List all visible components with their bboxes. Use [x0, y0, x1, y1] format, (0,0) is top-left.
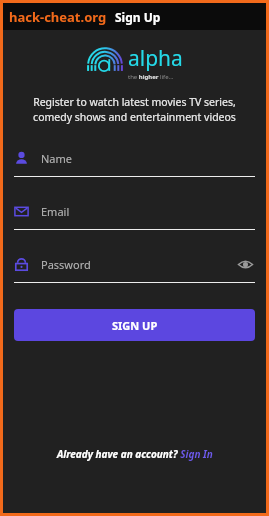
- staticText: Already have an account? Sign In: [57, 447, 213, 461]
- staticText: Register to watch latest movies TV serie…: [19, 95, 250, 124]
- button[interactable]: Show password: [235, 254, 255, 274]
- staticText: Email: [41, 204, 70, 219]
- staticText: Name: [41, 151, 73, 166]
- staticText: Password: [41, 257, 91, 272]
- staticText: hack-cheat.org: [9, 8, 107, 26]
- button[interactable]: Email: [14, 199, 255, 230]
- staticText: Sign Up: [115, 9, 161, 25]
- staticText: alpha: [128, 44, 183, 73]
- staticText: SIGN UP: [112, 318, 158, 333]
- button[interactable]: SIGN UP: [14, 309, 255, 341]
- button[interactable]: Name: [14, 146, 255, 177]
- button[interactable]: Already have an account? Sign In: [53, 443, 217, 465]
- staticText: the higher life...: [128, 73, 174, 81]
- button[interactable]: Password: [14, 252, 255, 283]
